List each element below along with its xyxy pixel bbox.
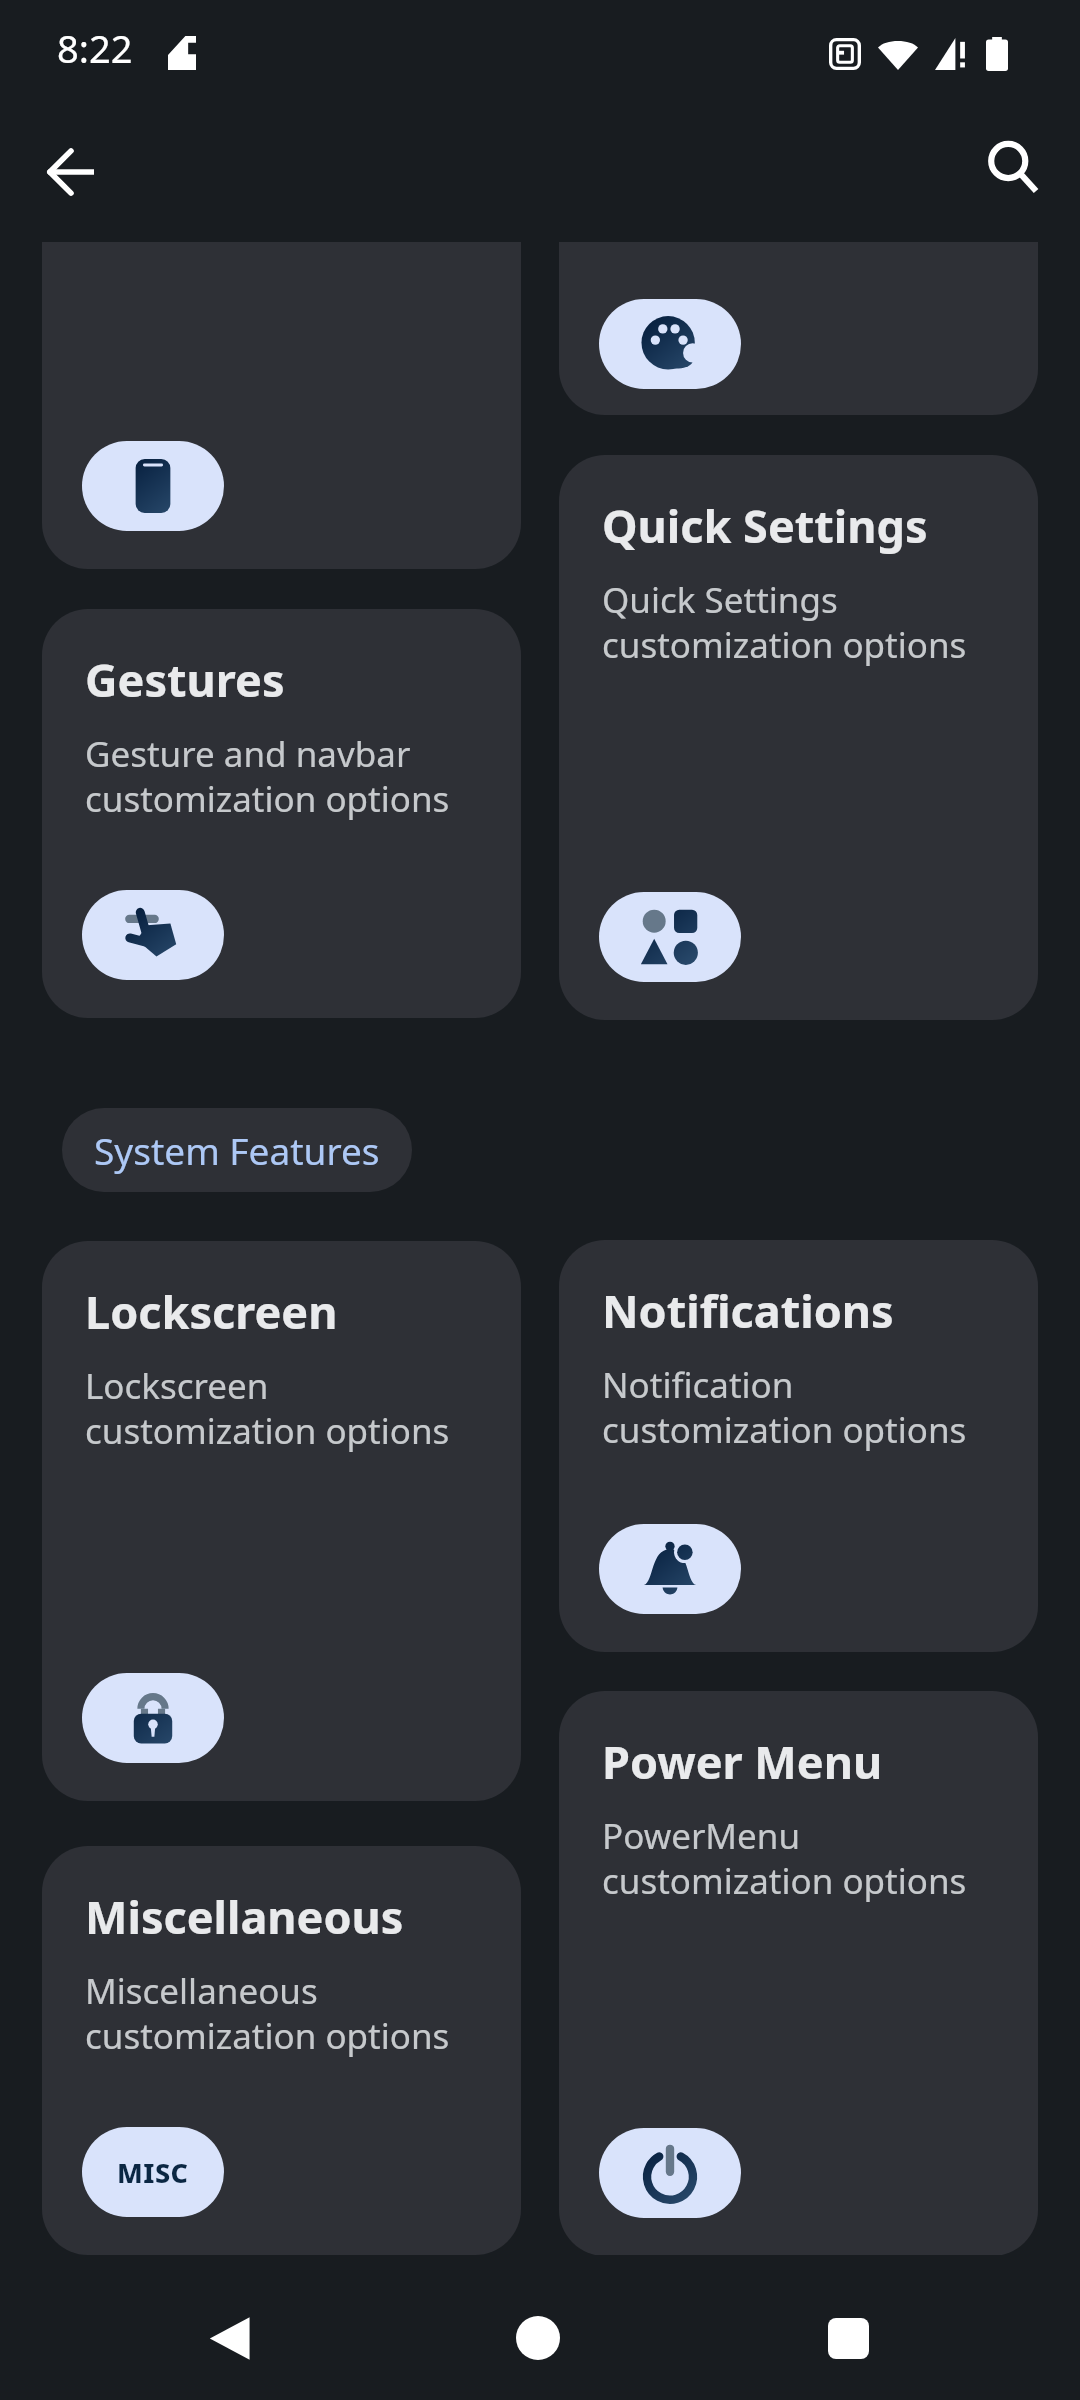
button[interactable]: Display: [42, 242, 521, 569]
button[interactable]: Back: [23, 124, 119, 220]
staticText: Miscellaneous: [85, 1886, 404, 1947]
staticText: Power Menu: [602, 1731, 883, 1792]
staticText: PowerMenu customization options: [602, 1812, 967, 1905]
button[interactable]: Home: [488, 2288, 588, 2388]
button[interactable]: System Features: [62, 1108, 412, 1192]
staticText: Gestures: [85, 649, 285, 710]
staticText: Quick Settings: [602, 495, 928, 556]
button[interactable]: Lockscreen: [42, 1241, 521, 1801]
button[interactable]: Back: [179, 2288, 279, 2388]
staticText: Lockscreen customization options: [85, 1362, 450, 1455]
button[interactable]: Power Menu: [559, 1691, 1038, 2256]
staticText: MISC: [117, 2154, 189, 2191]
staticText: Quick Settings customization options: [602, 576, 967, 669]
button[interactable]: [559, 242, 1038, 415]
button[interactable]: Search: [966, 120, 1062, 216]
staticText: Miscellaneous customization options: [85, 1967, 450, 2060]
staticText: Lockscreen: [85, 1281, 338, 1342]
button[interactable]: Quick Settings: [559, 455, 1038, 1020]
staticText: Gesture and navbar customization options: [85, 730, 450, 823]
staticText: System Features: [94, 1125, 380, 1175]
button[interactable]: Gestures: [42, 609, 521, 1018]
staticText: Notification customization options: [602, 1361, 967, 1454]
staticText: Notifications: [602, 1280, 894, 1341]
button[interactable]: Miscellaneous: [42, 1846, 521, 2255]
staticText: 8:22: [57, 22, 133, 74]
button[interactable]: Recent apps: [798, 2288, 898, 2388]
button[interactable]: Notifications: [559, 1240, 1038, 1652]
